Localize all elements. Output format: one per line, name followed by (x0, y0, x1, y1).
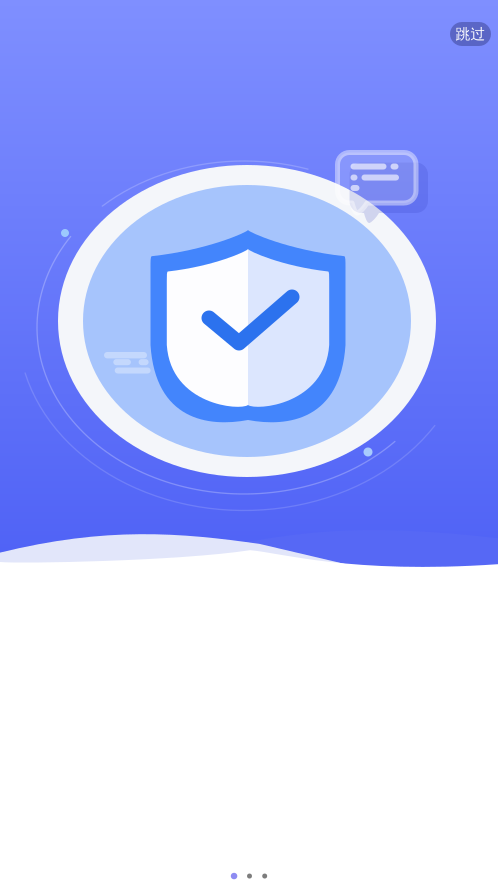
staticText: 跳过 (455, 25, 485, 43)
button[interactable]: 跳过 (450, 22, 491, 46)
